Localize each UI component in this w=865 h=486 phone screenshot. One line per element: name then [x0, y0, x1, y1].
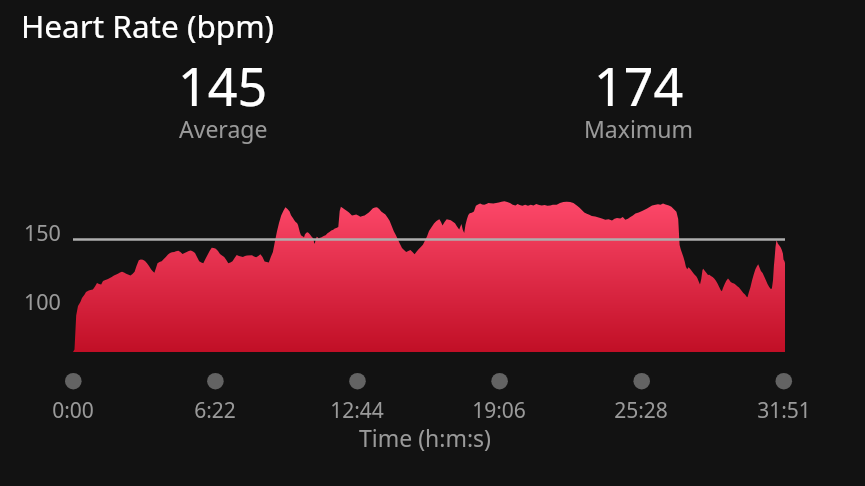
button[interactable]: Heart rate chart [73, 195, 785, 352]
button[interactable]: 12:44 [307, 396, 407, 425]
staticText: Maximum [584, 113, 694, 144]
button[interactable]: 0:00 [23, 396, 123, 425]
staticText: 174 [594, 50, 684, 121]
staticText: 12:44 [307, 396, 407, 425]
staticText: 31:51 [734, 396, 834, 425]
button[interactable]: 19:06 [449, 396, 549, 425]
staticText: 150 [24, 218, 61, 247]
staticText: 6:22 [165, 396, 265, 425]
button[interactable]: 145 [103, 50, 343, 152]
staticText: 100 [24, 287, 61, 316]
staticText: 25:28 [591, 396, 691, 425]
button[interactable]: 25:28 [591, 396, 691, 425]
button[interactable]: 31:51 [734, 396, 834, 425]
staticText: Time (h:m:s) [345, 422, 505, 453]
staticText: Heart Rate (bpm) [21, 4, 275, 47]
staticText: 19:06 [449, 396, 549, 425]
staticText: Average [179, 113, 268, 144]
button[interactable]: 174 [519, 50, 759, 152]
staticText: 0:00 [23, 396, 123, 425]
staticText: 145 [178, 50, 268, 121]
button[interactable]: 6:22 [165, 396, 265, 425]
